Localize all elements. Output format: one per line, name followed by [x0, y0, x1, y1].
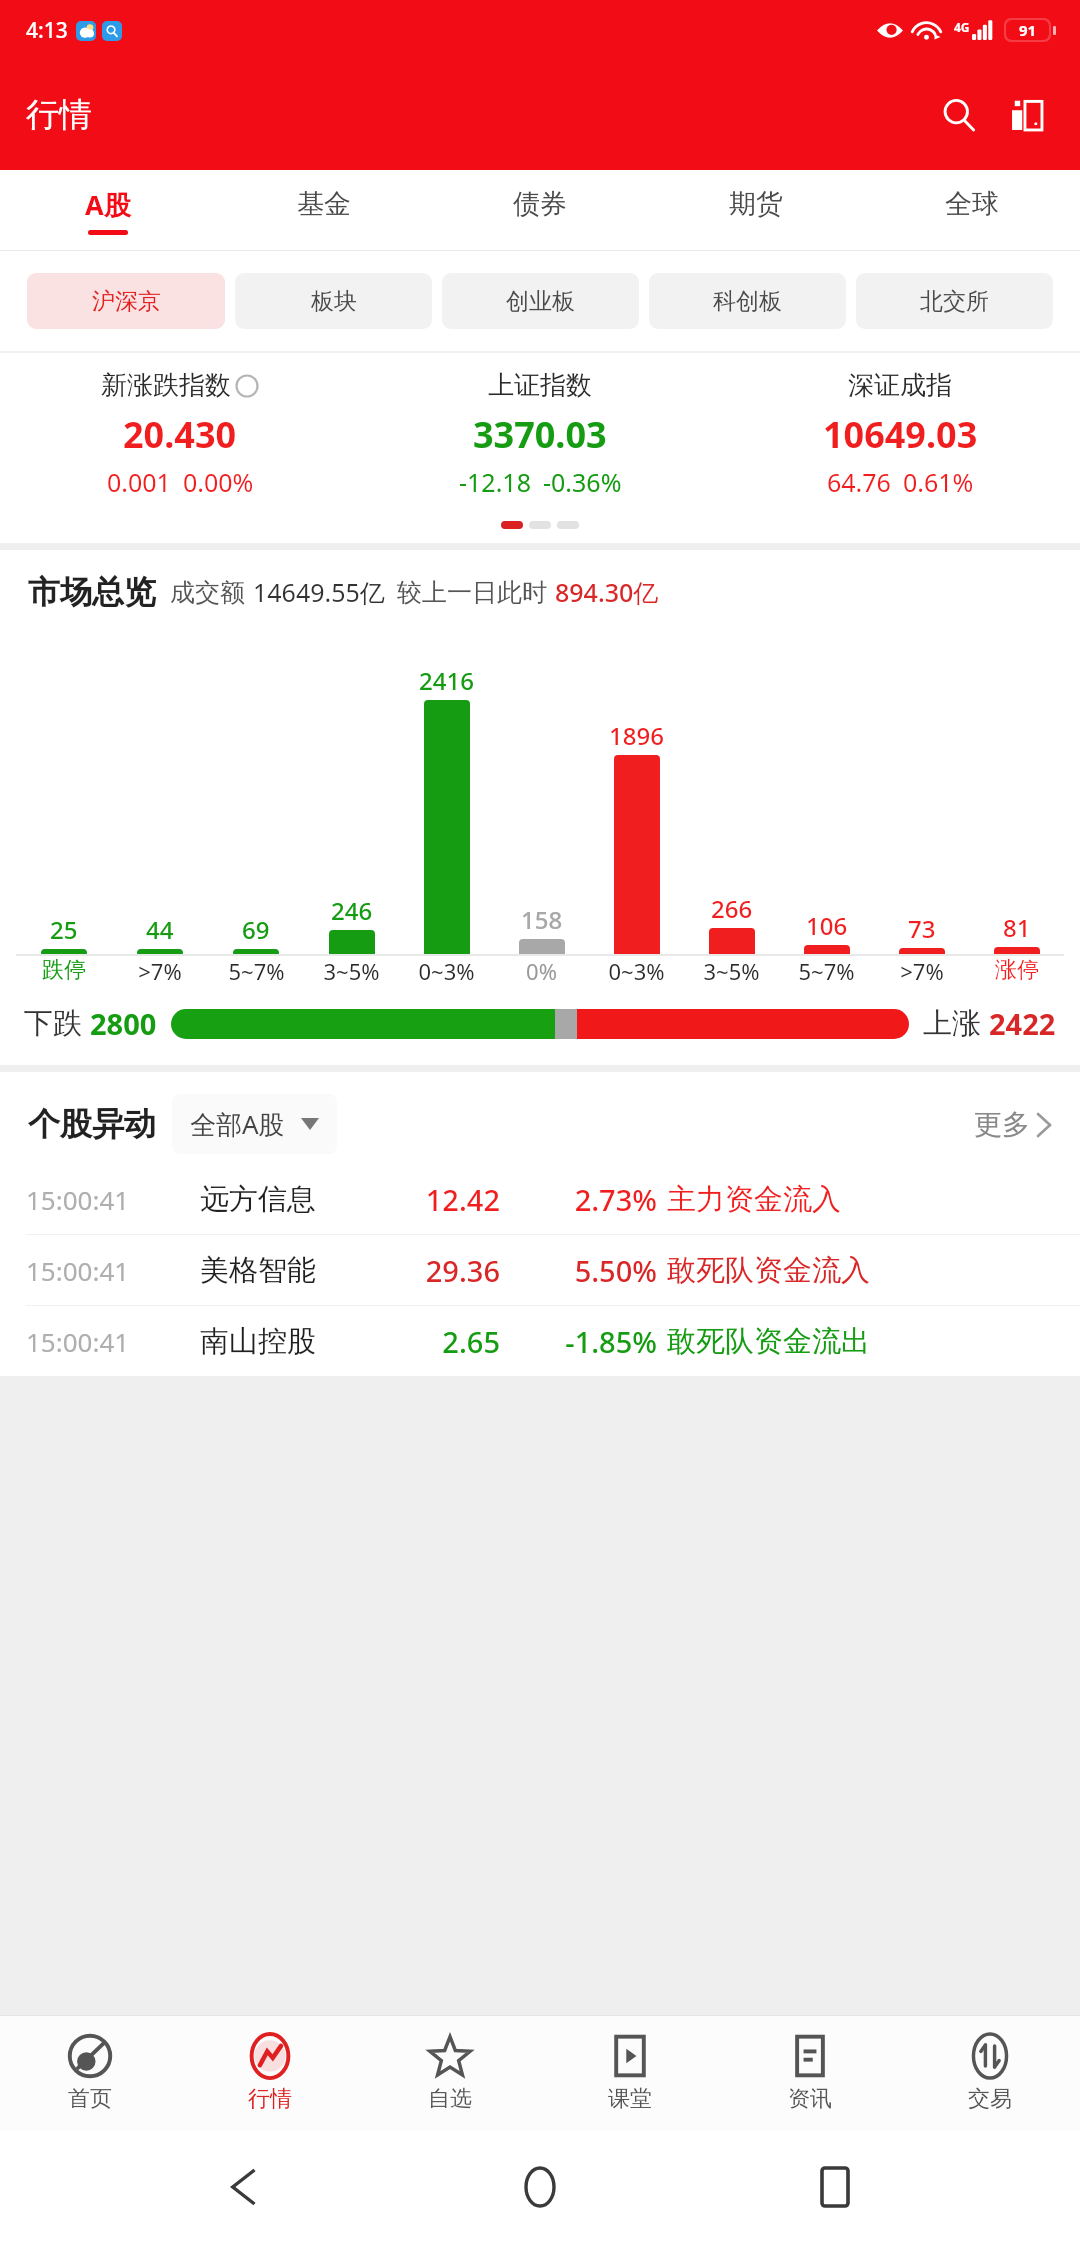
staticText: 交易: [968, 2085, 1012, 2113]
staticText: 0~3%: [418, 956, 475, 986]
staticText: 2.73%: [512, 1180, 657, 1219]
staticText: 81: [1003, 911, 1031, 944]
staticText: 新涨跌指数: [101, 369, 231, 402]
staticText: 5~7%: [798, 956, 855, 986]
staticText: 14649.55亿: [253, 575, 385, 609]
staticText: -0.36%: [543, 465, 622, 499]
button[interactable]: 自选: [360, 2016, 540, 2130]
staticText: 3370.03: [473, 410, 607, 459]
button[interactable]: 课堂: [540, 2016, 720, 2130]
staticText: >7%: [138, 956, 182, 986]
staticText: 南山控股: [200, 1323, 370, 1360]
staticText: 4:13: [26, 16, 68, 45]
staticText: 上证指数: [488, 369, 592, 402]
staticText: 29.36: [370, 1251, 500, 1290]
staticText: >7%: [900, 956, 944, 986]
staticText: 4G: [954, 19, 970, 35]
button[interactable]: Home: [490, 2137, 590, 2237]
button[interactable]: Search: [930, 86, 988, 144]
staticText: 2.65: [370, 1322, 500, 1361]
staticText: 行情: [248, 2085, 292, 2113]
staticText: 73: [908, 912, 936, 945]
staticText: 15:00:41: [26, 1324, 186, 1359]
staticText: 3~5%: [323, 956, 380, 986]
staticText: 44: [146, 913, 174, 946]
staticText: 跌停: [42, 956, 86, 984]
button[interactable]: 新涨跌指数: [0, 369, 360, 499]
staticText: 上涨: [923, 1005, 981, 1042]
button[interactable]: 板块: [235, 273, 432, 329]
button[interactable]: 上证指数: [360, 369, 720, 499]
staticText: 158: [521, 903, 563, 936]
staticText: 资讯: [788, 2085, 832, 2113]
button[interactable]: 资讯: [720, 2016, 900, 2130]
staticText: 10649.03: [823, 410, 978, 459]
staticText: 15:00:41: [26, 1182, 186, 1217]
staticText: 3~5%: [703, 956, 760, 986]
staticText: 下跌: [24, 1005, 82, 1042]
staticText: 敢死队资金流出: [667, 1323, 870, 1360]
staticText: 0.00%: [183, 465, 254, 499]
staticText: 12.42: [370, 1180, 500, 1219]
button[interactable]: 交易: [900, 2016, 1080, 2130]
staticText: 深证成指: [848, 369, 952, 402]
button[interactable]: Customize layout: [998, 86, 1056, 144]
staticText: 106: [806, 909, 848, 942]
staticText: -12.18: [459, 465, 531, 499]
staticText: 2422: [989, 1004, 1056, 1043]
staticText: 25: [50, 913, 78, 946]
button[interactable]: 15:00:41: [26, 1306, 1058, 1376]
button[interactable]: 行情: [180, 2016, 360, 2130]
staticText: 北交所: [920, 287, 989, 316]
staticText: 远方信息: [200, 1181, 370, 1218]
staticText: 894.30亿: [555, 575, 659, 609]
button[interactable]: A股: [0, 170, 216, 250]
button[interactable]: 全部A股: [190, 1094, 319, 1154]
button[interactable]: 期货: [648, 170, 864, 250]
button[interactable]: 沪深京: [27, 273, 225, 329]
staticText: 全部A股: [190, 1106, 285, 1142]
staticText: 0.61%: [903, 465, 974, 499]
staticText: 主力资金流入: [667, 1181, 841, 1218]
staticText: 科创板: [713, 287, 782, 316]
staticText: 债券: [513, 187, 567, 221]
button[interactable]: 债券: [432, 170, 648, 250]
staticText: 15:00:41: [26, 1253, 186, 1288]
button[interactable]: 15:00:41: [26, 1164, 1058, 1234]
staticText: 0%: [526, 956, 557, 986]
staticText: 期货: [729, 187, 783, 221]
staticText: 自选: [428, 2085, 472, 2113]
staticText: 91: [1019, 20, 1037, 40]
staticText: 基金: [297, 187, 351, 221]
button[interactable]: 北交所: [856, 273, 1053, 329]
button[interactable]: 首页: [0, 2016, 180, 2130]
staticText: -1.85%: [512, 1322, 657, 1361]
staticText: 5.50%: [512, 1251, 657, 1290]
button[interactable]: 创业板: [442, 273, 639, 329]
button[interactable]: 全球: [864, 170, 1080, 250]
staticText: 0.001: [107, 465, 171, 499]
button[interactable]: 15:00:41: [26, 1235, 1058, 1305]
staticText: A股: [85, 186, 131, 223]
staticText: 成交额: [170, 577, 245, 608]
button[interactable]: 基金: [216, 170, 432, 250]
staticText: 课堂: [608, 2085, 652, 2113]
staticText: 较上一日此时: [397, 577, 547, 608]
staticText: 266: [711, 892, 753, 925]
staticText: 0~3%: [608, 956, 665, 986]
staticText: 20.430: [123, 410, 237, 459]
staticText: 69: [242, 913, 270, 946]
button[interactable]: 科创板: [649, 273, 846, 329]
staticText: 板块: [311, 287, 357, 316]
button[interactable]: 更多: [968, 1101, 1058, 1148]
staticText: 5~7%: [228, 956, 285, 986]
staticText: 沪深京: [92, 287, 161, 316]
button[interactable]: Recents: [785, 2137, 885, 2237]
button[interactable]: 深证成指: [720, 369, 1080, 499]
staticText: 美格智能: [200, 1252, 370, 1289]
button[interactable]: 下跌: [24, 1004, 1056, 1043]
staticText: 246: [331, 894, 373, 927]
staticText: 更多: [974, 1107, 1030, 1142]
staticText: 首页: [68, 2085, 112, 2113]
button[interactable]: Back: [195, 2137, 295, 2237]
